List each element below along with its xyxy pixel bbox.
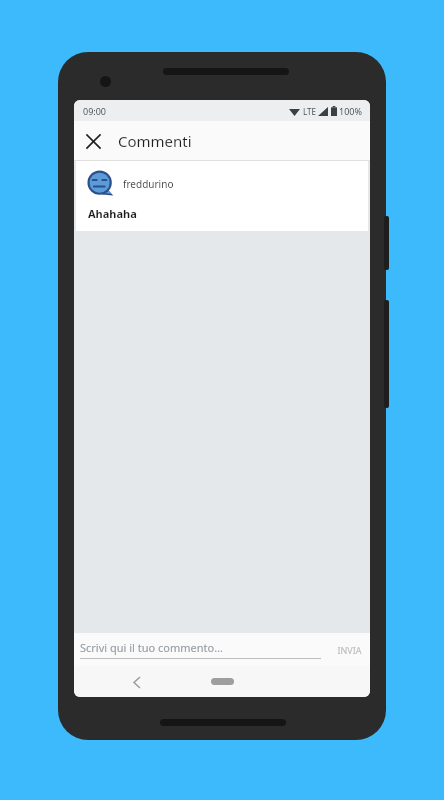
staticText: Ahahaha bbox=[88, 206, 137, 221]
button[interactable]: INVIA bbox=[329, 638, 370, 662]
button[interactable]: Indietro bbox=[122, 667, 152, 697]
button[interactable]: Scrivi qui il tuo commento… bbox=[80, 640, 321, 659]
button[interactable]: freddurino bbox=[76, 161, 368, 231]
staticText: LTE bbox=[303, 106, 316, 117]
staticText: INVIA bbox=[337, 644, 362, 656]
staticText: Scrivi qui il tuo commento… bbox=[80, 640, 223, 655]
staticText: 09:00 bbox=[83, 105, 107, 117]
button[interactable]: Home bbox=[211, 678, 234, 685]
staticText: freddurino bbox=[123, 177, 174, 191]
staticText: Commenti bbox=[118, 131, 192, 151]
button[interactable]: Chiudi bbox=[74, 122, 112, 160]
staticText: 100% bbox=[339, 105, 362, 117]
